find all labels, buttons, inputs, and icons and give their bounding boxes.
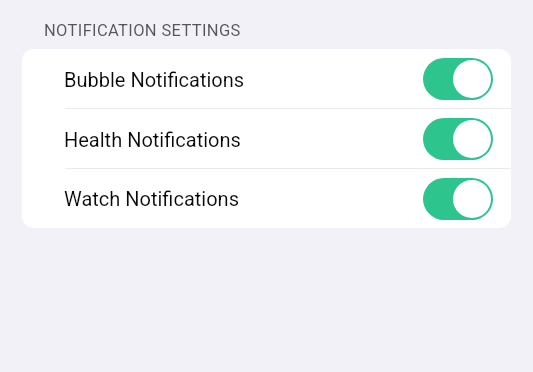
staticText: NOTIFICATION SETTINGS bbox=[44, 21, 241, 40]
button[interactable]: Watch Notifications switch, on bbox=[423, 178, 493, 220]
button[interactable]: Bubble Notifications bbox=[22, 49, 511, 109]
staticText: Bubble Notifications bbox=[64, 68, 245, 91]
staticText: Health Notifications bbox=[64, 128, 241, 151]
button[interactable]: Health Notifications switch, on bbox=[423, 118, 493, 160]
button[interactable]: Bubble Notifications switch, on bbox=[423, 58, 493, 100]
staticText: Watch Notifications bbox=[64, 187, 239, 210]
button[interactable]: Health Notifications bbox=[22, 109, 511, 169]
button[interactable]: Watch Notifications bbox=[22, 169, 511, 228]
